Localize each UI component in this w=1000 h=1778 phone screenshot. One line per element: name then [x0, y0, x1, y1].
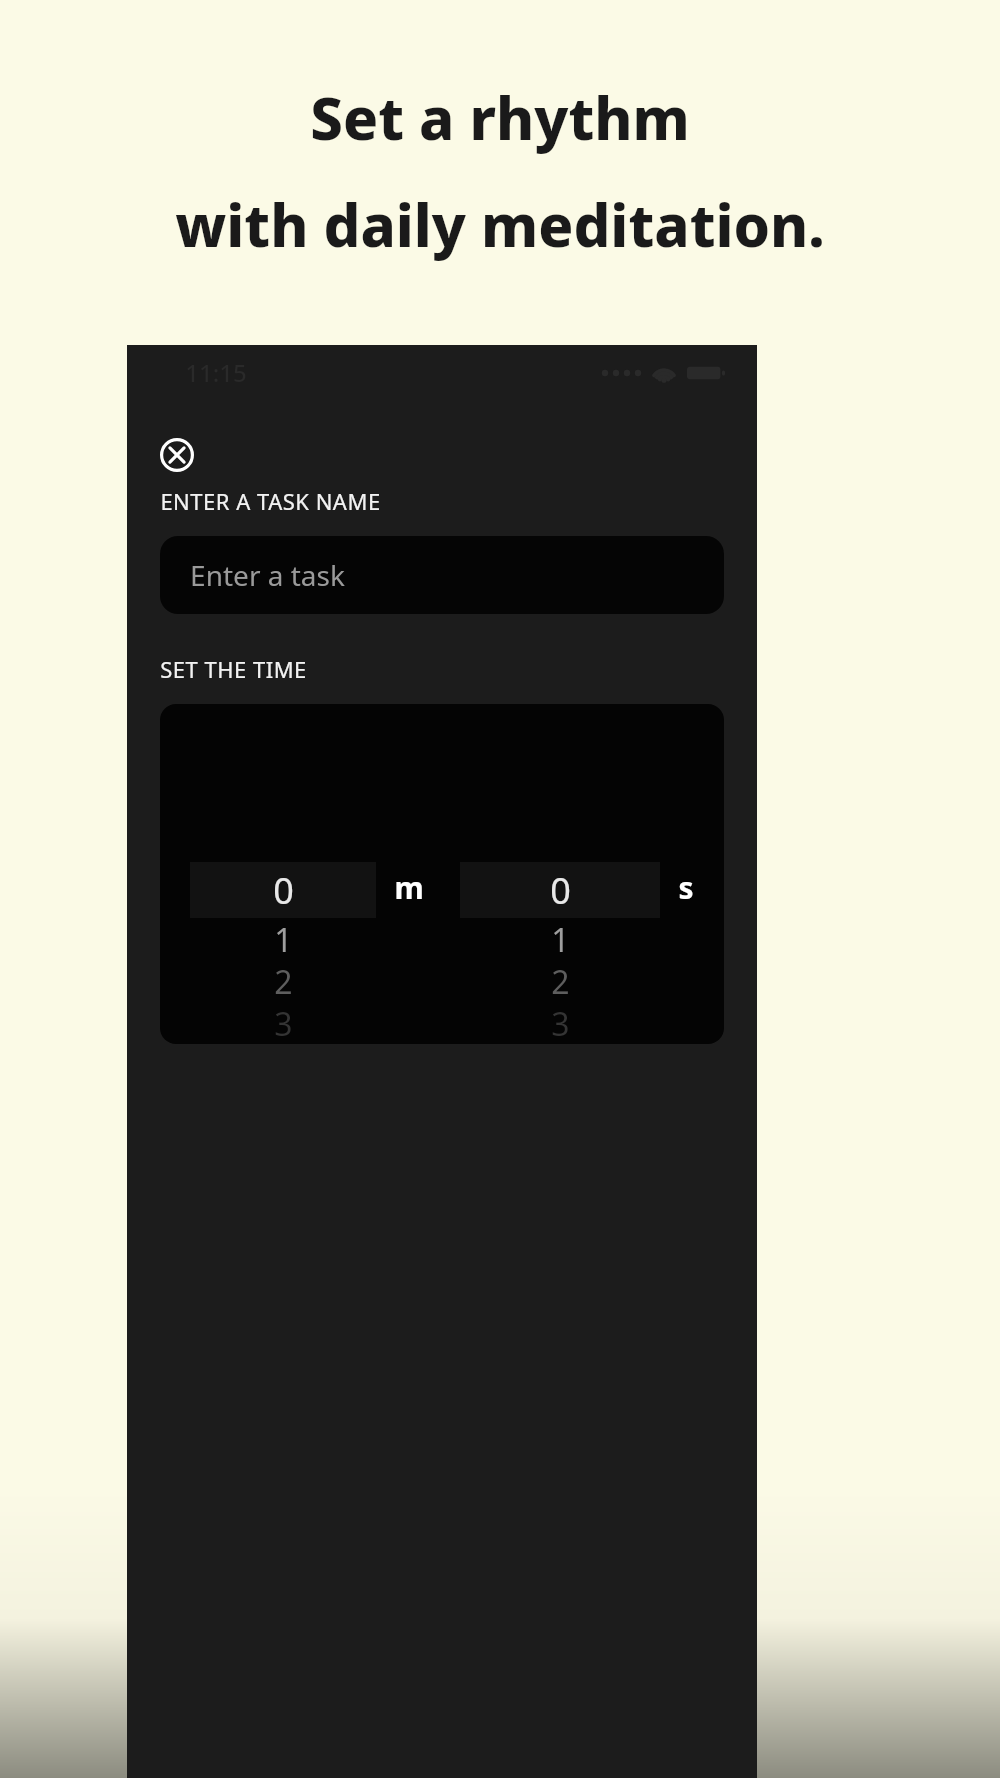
staticText: 11:15 [185, 356, 247, 389]
staticText: 1 [551, 918, 570, 960]
staticText: 2 [551, 960, 570, 1002]
staticText: 3 [274, 1002, 293, 1044]
staticText: ENTER A TASK NAME [160, 486, 381, 516]
staticText: Set a rhythm [310, 78, 690, 157]
staticText: with daily meditation. [175, 185, 825, 264]
button[interactable]: Enter a task [160, 536, 724, 614]
button[interactable]: 0 [460, 704, 660, 1044]
staticText: s [678, 867, 694, 908]
staticText: 1 [274, 918, 293, 960]
staticText: 0 [550, 866, 571, 915]
button[interactable]: 0 [190, 704, 376, 1044]
staticText: 0 [273, 866, 294, 915]
button[interactable]: Close [160, 438, 194, 472]
staticText: Enter a task [190, 556, 345, 594]
staticText: 2 [274, 960, 293, 1002]
staticText: 3 [551, 1002, 570, 1044]
staticText: SET THE TIME [160, 654, 307, 684]
staticText: m [394, 867, 424, 908]
